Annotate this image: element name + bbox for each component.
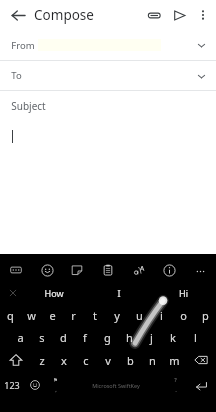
button[interactable]: c: [75, 348, 97, 372]
button[interactable]: i: [150, 304, 172, 326]
staticText: j: [150, 330, 153, 345]
button[interactable]: Space: [66, 372, 165, 398]
button[interactable]: w: [21, 304, 42, 326]
button[interactable]: Stickers: [65, 258, 89, 282]
button[interactable]: Emoji: [35, 258, 59, 282]
button[interactable]: t: [84, 304, 106, 326]
staticText: h: [126, 330, 133, 345]
staticText: ?: [174, 376, 177, 383]
button[interactable]: n: [141, 348, 163, 372]
staticText: b: [127, 353, 134, 368]
button[interactable]: g: [96, 326, 118, 348]
button[interactable]: u: [128, 304, 150, 326]
staticText: How: [44, 287, 64, 299]
staticText: d: [60, 330, 67, 345]
button[interactable]: x: [53, 348, 75, 372]
staticText: c: [83, 353, 89, 368]
staticText: s: [39, 330, 45, 345]
button[interactable]: b: [119, 348, 141, 372]
button[interactable]: Shift: [0, 348, 31, 372]
button[interactable]: Comma: [45, 372, 66, 398]
staticText: f: [83, 330, 87, 345]
button[interactable]: From: [0, 30, 216, 60]
button[interactable]: Back: [6, 3, 30, 27]
button[interactable]: I: [86, 282, 151, 304]
button[interactable]: Close suggestions: [4, 284, 22, 302]
button[interactable]: [0, 120, 216, 160]
staticText: l: [194, 330, 197, 345]
button[interactable]: Send: [166, 2, 192, 28]
staticText: e: [49, 308, 56, 323]
button[interactable]: To: [0, 61, 216, 90]
staticText: m: [169, 353, 180, 368]
button[interactable]: Clipboard: [96, 258, 120, 282]
button[interactable]: Enter: [186, 372, 216, 398]
button[interactable]: s: [31, 326, 52, 348]
staticText: a: [17, 330, 24, 345]
button[interactable]: Attach file: [140, 2, 166, 28]
button[interactable]: p: [194, 304, 216, 326]
button[interactable]: d: [52, 326, 74, 348]
button[interactable]: j: [140, 326, 162, 348]
button[interactable]: z: [31, 348, 53, 372]
button[interactable]: h: [118, 326, 140, 348]
staticText: n: [149, 353, 156, 368]
staticText: o: [180, 308, 187, 323]
button[interactable]: o: [172, 304, 194, 326]
staticText: p: [202, 308, 209, 323]
staticText: Compose: [34, 6, 94, 24]
staticText: y: [114, 308, 120, 323]
button[interactable]: Emoji keyboard: [24, 372, 45, 398]
button[interactable]: Translate: [127, 258, 151, 282]
button[interactable]: More options: [192, 4, 214, 26]
button[interactable]: Backspace: [185, 348, 216, 372]
button[interactable]: Period: [165, 372, 186, 398]
button[interactable]: Subject: [0, 91, 216, 120]
staticText: To: [11, 69, 22, 82]
button[interactable]: Hi: [151, 282, 216, 304]
staticText: q: [7, 308, 14, 323]
staticText: ,: [55, 386, 57, 394]
staticText: t: [93, 308, 97, 323]
staticText: u: [136, 308, 143, 323]
staticText: r: [71, 308, 76, 323]
button[interactable]: l: [184, 326, 206, 348]
staticText: .: [175, 386, 177, 394]
staticText: I: [117, 287, 121, 299]
staticText: k: [170, 330, 176, 345]
button[interactable]: More: [188, 258, 212, 282]
button[interactable]: e: [42, 304, 63, 326]
button[interactable]: r: [63, 304, 84, 326]
staticText: ⚑: [53, 377, 58, 383]
button[interactable]: m: [163, 348, 185, 372]
staticText: 123: [4, 379, 20, 391]
staticText: Microsoft SwiftKey: [92, 382, 140, 389]
button[interactable]: v: [97, 348, 119, 372]
button[interactable]: q: [0, 304, 21, 326]
staticText: From: [11, 39, 35, 52]
staticText: w: [27, 308, 36, 323]
button[interactable]: 123: [0, 372, 24, 398]
staticText: i: [160, 308, 163, 323]
staticText: Subject: [11, 99, 46, 113]
button[interactable]: y: [106, 304, 128, 326]
button[interactable]: Keyboard settings: [4, 258, 28, 282]
button[interactable]: Info: [157, 258, 181, 282]
staticText: Hi: [179, 287, 188, 299]
staticText: g: [104, 330, 111, 345]
button[interactable]: k: [162, 326, 184, 348]
button[interactable]: f: [74, 326, 96, 348]
staticText: v: [105, 353, 111, 368]
button[interactable]: How: [22, 282, 86, 304]
staticText: z: [39, 353, 45, 368]
staticText: x: [61, 353, 67, 368]
button[interactable]: a: [10, 326, 31, 348]
